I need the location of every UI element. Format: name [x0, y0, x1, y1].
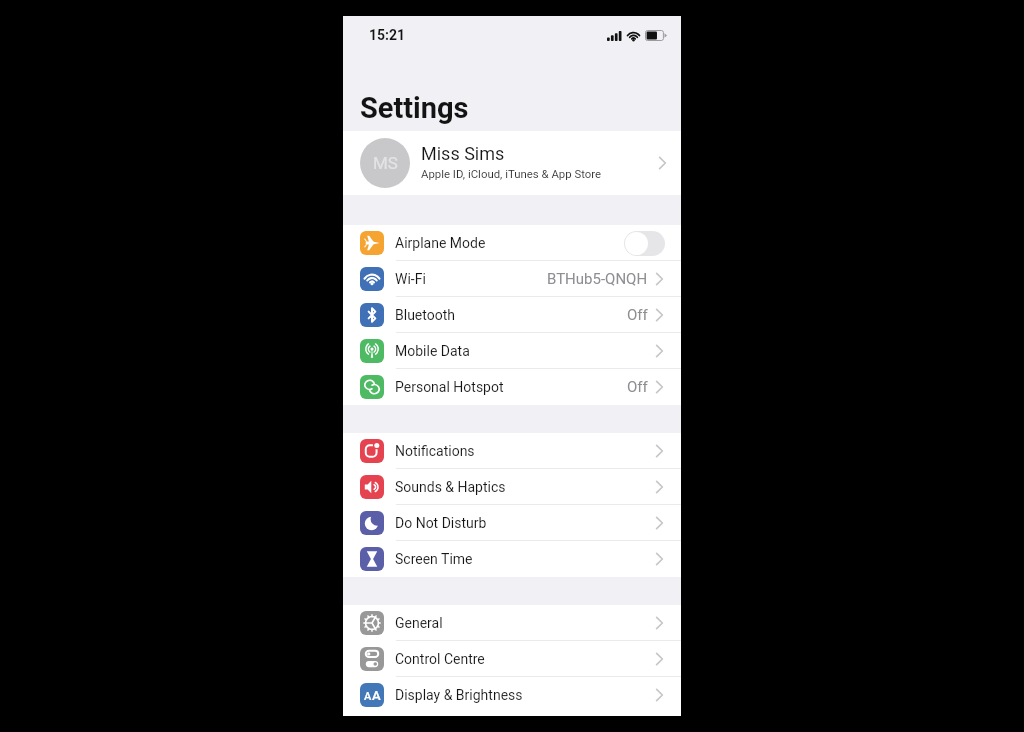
button[interactable]: Bluetooth: [343, 297, 681, 333]
staticText: Airplane Mode: [395, 235, 486, 251]
staticText: Control Centre: [395, 651, 485, 667]
button[interactable]: Mobile Data: [343, 333, 681, 369]
staticText: Do Not Disturb: [395, 515, 487, 531]
button[interactable]: Do Not Disturb: [343, 505, 681, 541]
staticText: Wi-Fi: [395, 271, 426, 287]
button[interactable]: Sounds & Haptics: [343, 469, 681, 505]
staticText: 15:21: [369, 27, 406, 43]
staticText: BTHub5-QNQH: [547, 270, 648, 288]
button[interactable]: Control Centre: [343, 641, 681, 677]
staticText: Off: [627, 378, 648, 396]
staticText: Apple ID, iCloud, iTunes & App Store: [421, 167, 602, 180]
staticText: Bluetooth: [395, 307, 455, 323]
staticText: Display & Brightness: [395, 687, 523, 703]
staticText: Miss Sims: [421, 143, 505, 164]
staticText: Screen Time: [395, 551, 473, 567]
staticText: Off: [627, 306, 648, 324]
button[interactable]: Wi-Fi: [343, 261, 681, 297]
button[interactable]: Screen Time: [343, 541, 681, 577]
button[interactable]: General: [343, 605, 681, 641]
button[interactable]: A: [343, 677, 681, 713]
staticText: Notifications: [395, 443, 475, 459]
button[interactable]: Toggle Airplane Mode: [624, 231, 665, 256]
button[interactable]: Personal Hotspot: [343, 369, 681, 405]
staticText: A: [372, 688, 381, 703]
staticText: MS: [373, 153, 398, 173]
staticText: Mobile Data: [395, 343, 470, 359]
staticText: Sounds & Haptics: [395, 479, 506, 495]
staticText: Personal Hotspot: [395, 379, 504, 395]
staticText: Settings: [360, 91, 469, 125]
staticText: General: [395, 615, 443, 631]
button[interactable]: MS: [343, 131, 681, 195]
button[interactable]: Notifications: [343, 433, 681, 469]
staticText: A: [364, 690, 372, 703]
button[interactable]: Airplane Mode: [343, 225, 681, 261]
